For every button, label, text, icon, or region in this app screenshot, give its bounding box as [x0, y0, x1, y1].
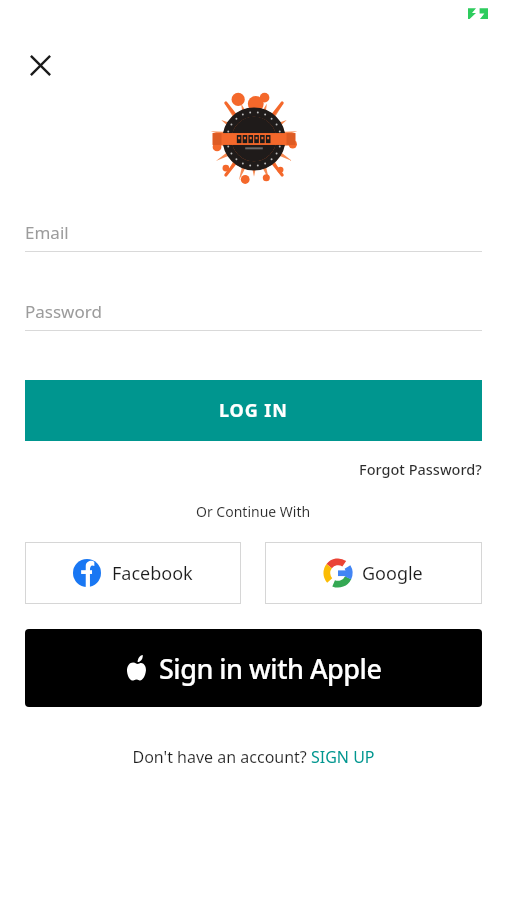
staticText: Facebook: [112, 561, 193, 586]
staticText: Don't have an account? SIGN UP: [132, 746, 375, 768]
other: Battery: [468, 7, 488, 20]
staticText: Or Continue With: [196, 502, 311, 521]
button[interactable]: Close: [20, 45, 60, 85]
button[interactable]: Facebook: [25, 542, 241, 604]
staticText: Email: [25, 221, 69, 244]
staticText: LOG IN: [219, 398, 288, 423]
staticText: Password: [25, 300, 102, 323]
button[interactable]: LOG IN: [25, 380, 482, 441]
staticText: Forgot Password?: [359, 459, 482, 479]
button[interactable]: Sign in with Apple: [25, 629, 482, 707]
button[interactable]: Google: [265, 542, 482, 604]
button[interactable]: Email: [25, 221, 482, 252]
staticText: Google: [362, 561, 423, 586]
button[interactable]: Password: [25, 300, 482, 331]
button[interactable]: Forgot Password?: [359, 455, 482, 483]
staticText: Sign in with Apple: [159, 650, 382, 687]
button[interactable]: Don't have an account? SIGN UP: [128, 742, 379, 772]
